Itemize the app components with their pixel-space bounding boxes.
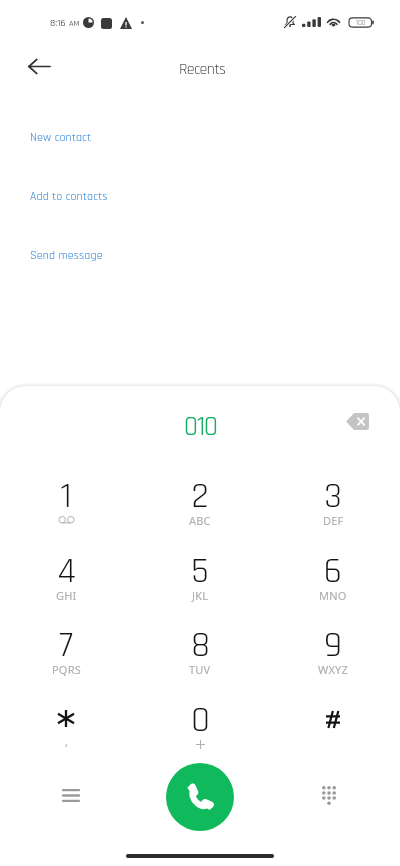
staticText: 100 (356, 18, 366, 27)
staticText: MNO (319, 588, 347, 603)
staticText: JKL (192, 588, 209, 603)
button[interactable]: Dialpad (308, 775, 349, 816)
staticText: 8 (191, 623, 210, 669)
staticText: , (65, 734, 68, 749)
button[interactable] (277, 686, 389, 752)
staticText: TUV (189, 662, 211, 677)
staticText: 9 (324, 623, 342, 669)
staticText: Add to contacts (30, 189, 108, 204)
button[interactable]: 6 (277, 537, 389, 603)
staticText: GHI (56, 588, 77, 603)
button[interactable]: 1 (10, 462, 122, 528)
button[interactable]: 5 (144, 537, 256, 603)
button[interactable]: Backspace (339, 403, 375, 439)
button[interactable]: Send message (0, 244, 400, 266)
staticText: 2 (191, 474, 209, 520)
button[interactable]: 8 (144, 611, 256, 677)
staticText: 7 (59, 623, 73, 669)
staticText: Send message (30, 248, 103, 263)
staticText: 0 (191, 698, 210, 744)
staticText: DEF (323, 513, 344, 528)
staticText: PQRS (52, 662, 81, 677)
button[interactable]: 7 (10, 611, 122, 677)
button[interactable]: Call log (50, 775, 91, 816)
staticText: 3 (324, 474, 342, 520)
staticText: 010 (184, 410, 217, 444)
button[interactable]: New contact (0, 126, 400, 148)
staticText: AM (69, 18, 80, 29)
staticText: 8:16 (50, 17, 66, 30)
button[interactable]: Add to contacts (0, 185, 400, 207)
button[interactable]: 4 (10, 537, 122, 603)
button[interactable]: Back (19, 46, 59, 86)
staticText: ABC (189, 513, 211, 528)
button[interactable]: , (10, 686, 122, 752)
staticText: 4 (57, 549, 76, 595)
button[interactable]: 0 (144, 686, 256, 752)
staticText: 6 (324, 549, 342, 595)
button[interactable]: 2 (144, 462, 256, 528)
staticText: WXYZ (318, 662, 348, 677)
staticText: New contact (30, 130, 92, 145)
button[interactable]: 9 (277, 611, 389, 677)
staticText: Recents (179, 59, 226, 79)
staticText: 1 (60, 474, 72, 520)
button[interactable]: 3 (277, 462, 389, 528)
staticText: 5 (191, 549, 209, 595)
button[interactable]: Call (166, 763, 234, 831)
